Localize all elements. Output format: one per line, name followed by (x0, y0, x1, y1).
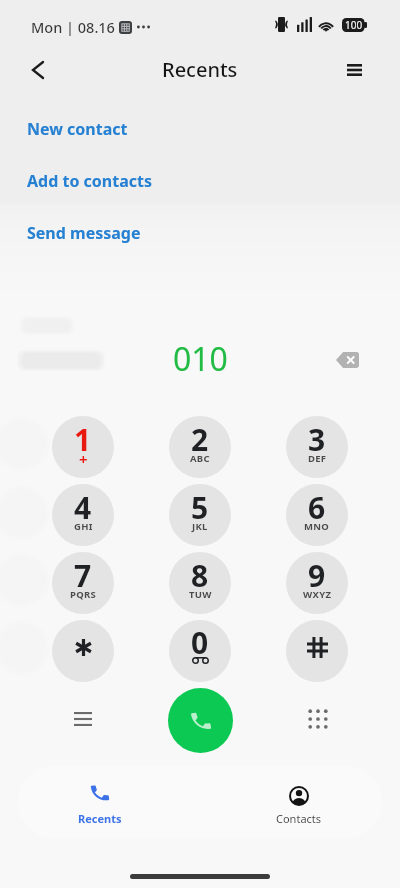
staticText: 4 (74, 487, 92, 528)
button[interactable]: 3 (286, 416, 348, 478)
button[interactable]: Call (168, 688, 233, 753)
staticText: 010 (173, 337, 228, 381)
button[interactable] (286, 620, 348, 682)
staticText: GHI (74, 520, 93, 533)
button[interactable]: 4 (52, 484, 114, 546)
button[interactable]: Add to contacts (0, 155, 400, 207)
button[interactable]: Keypad (295, 696, 340, 741)
button[interactable]: 9 (286, 552, 348, 614)
staticText: 7 (74, 555, 92, 596)
staticText: + (79, 449, 88, 469)
staticText: 2 (191, 419, 209, 460)
button[interactable]: More options (60, 696, 105, 741)
staticText: 3 (308, 419, 326, 460)
button[interactable]: 6 (286, 484, 348, 546)
staticText: 9 (308, 555, 326, 596)
button[interactable]: New contact (0, 103, 400, 155)
button[interactable]: 0 (169, 620, 231, 682)
staticText: WXYZ (303, 588, 332, 601)
staticText: JKL (192, 520, 208, 533)
staticText: Recents (78, 811, 122, 826)
button[interactable]: 5 (169, 484, 231, 546)
staticText: Recents (162, 56, 238, 83)
staticText: New contact (27, 118, 128, 140)
staticText: Send message (27, 222, 141, 244)
staticText: 6 (308, 487, 326, 528)
staticText: Contacts (276, 811, 322, 826)
staticText: 8 (191, 555, 209, 596)
button[interactable]: Contacts (254, 780, 344, 832)
button[interactable]: Backspace (327, 340, 367, 380)
staticText: 100 (345, 18, 363, 32)
staticText: DEF (308, 452, 327, 465)
staticText: Add to contacts (27, 170, 152, 192)
staticText: MNO (304, 520, 330, 533)
button[interactable] (52, 620, 114, 682)
staticText: PQRS (70, 588, 97, 601)
staticText: 1 (74, 419, 92, 460)
button[interactable]: Menu (332, 48, 376, 92)
staticText: TUW (189, 588, 212, 601)
staticText: Mon | 08.16 (31, 17, 115, 37)
button[interactable]: Recents (55, 780, 145, 832)
staticText: ABC (190, 452, 210, 465)
staticText: 5 (191, 487, 209, 528)
button[interactable]: 2 (169, 416, 231, 478)
button[interactable]: 8 (169, 552, 231, 614)
button[interactable]: 7 (52, 552, 114, 614)
button[interactable]: 1 (52, 416, 114, 478)
button[interactable]: Back (16, 48, 60, 92)
staticText: 0 (191, 622, 209, 663)
button[interactable]: Send message (0, 207, 400, 259)
